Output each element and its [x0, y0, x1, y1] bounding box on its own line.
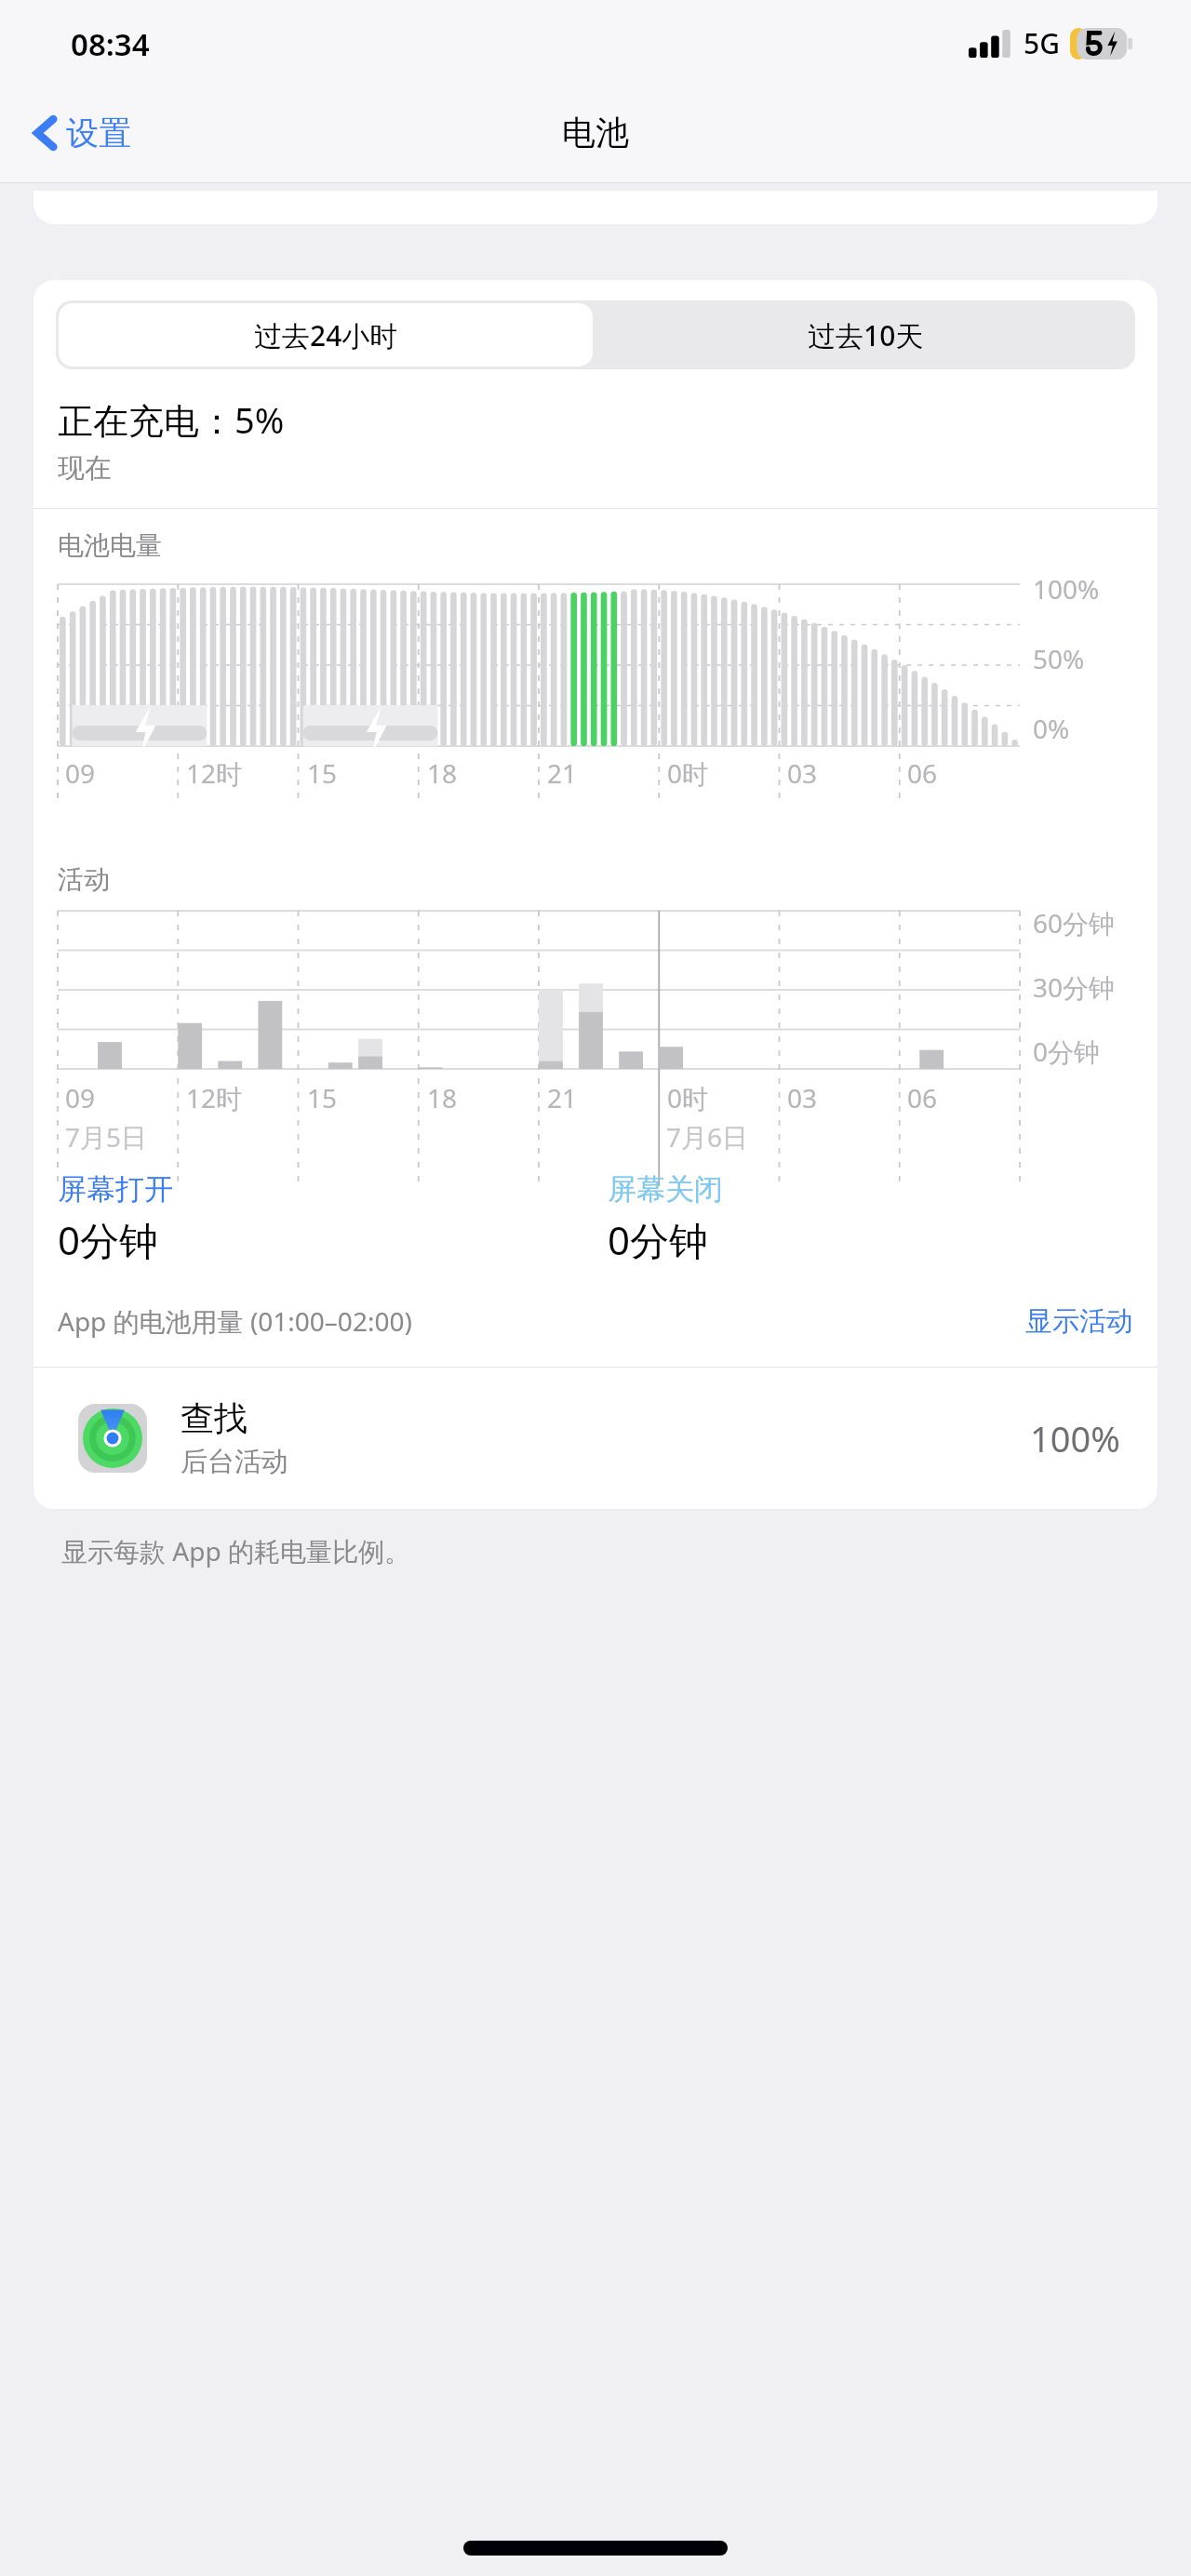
staticText: 06 — [907, 755, 938, 791]
staticText: 显示每款 App 的耗电量比例。 — [61, 1533, 410, 1568]
staticText: 7月6日 — [666, 1119, 749, 1155]
staticText: 0时 — [667, 755, 709, 791]
staticText: 09 — [65, 1080, 96, 1115]
staticText: 21 — [547, 1080, 578, 1115]
staticText: 12时 — [186, 1080, 243, 1115]
button[interactable]: 设置 — [0, 100, 148, 167]
staticText: 0时 — [667, 1080, 709, 1115]
staticText: 18 — [427, 1080, 458, 1115]
staticText: 15 — [307, 1080, 338, 1115]
staticText: 屏幕关闭 — [608, 1171, 723, 1208]
staticText: 活动 — [58, 863, 110, 896]
staticText: 100% — [1033, 571, 1100, 607]
staticText: 查找 — [181, 1397, 248, 1439]
staticText: 0分钟 — [608, 1213, 709, 1266]
staticText: 15 — [307, 755, 338, 791]
staticText: 21 — [547, 755, 578, 791]
staticText: 正在充电：5% — [58, 395, 285, 444]
other: 查找 App 图标 — [78, 1404, 147, 1473]
button[interactable]: 显示活动 — [1025, 1304, 1133, 1339]
button[interactable]: 查找 App 图标 — [33, 1368, 1158, 1509]
staticText: 设置 — [66, 113, 131, 153]
staticText: 03 — [787, 755, 818, 791]
staticText: 09 — [65, 755, 96, 791]
staticText: 100% — [1030, 1414, 1120, 1462]
staticText: 03 — [787, 1080, 818, 1115]
staticText: 屏幕打开 — [58, 1171, 173, 1208]
staticText: 30分钟 — [1033, 969, 1116, 1005]
button[interactable]: 过去10天 — [595, 300, 1135, 369]
staticText: 0分钟 — [1033, 1034, 1101, 1069]
staticText: 过去10天 — [808, 316, 924, 354]
staticText: 12时 — [186, 755, 243, 791]
staticText: 50% — [1033, 641, 1085, 676]
staticText: 60分钟 — [1033, 905, 1116, 941]
staticText: 电池 — [562, 112, 629, 153]
button[interactable]: 过去24小时 — [59, 303, 593, 367]
staticText: 显示活动 — [1025, 1304, 1133, 1339]
staticText: 5G — [1024, 24, 1060, 62]
staticText: 过去24小时 — [254, 316, 398, 354]
staticText: App 的电池用量 (01:00–02:00) — [58, 1303, 412, 1339]
staticText: 08:34 — [71, 23, 150, 65]
staticText: 现在 — [58, 451, 112, 486]
staticText: 0% — [1033, 711, 1070, 746]
staticText: 7月5日 — [65, 1119, 148, 1155]
staticText: 电池电量 — [58, 529, 162, 562]
staticText: 0分钟 — [58, 1213, 159, 1266]
staticText: 后台活动 — [181, 1445, 288, 1479]
staticText: 18 — [427, 755, 458, 791]
staticText: 06 — [907, 1080, 938, 1115]
